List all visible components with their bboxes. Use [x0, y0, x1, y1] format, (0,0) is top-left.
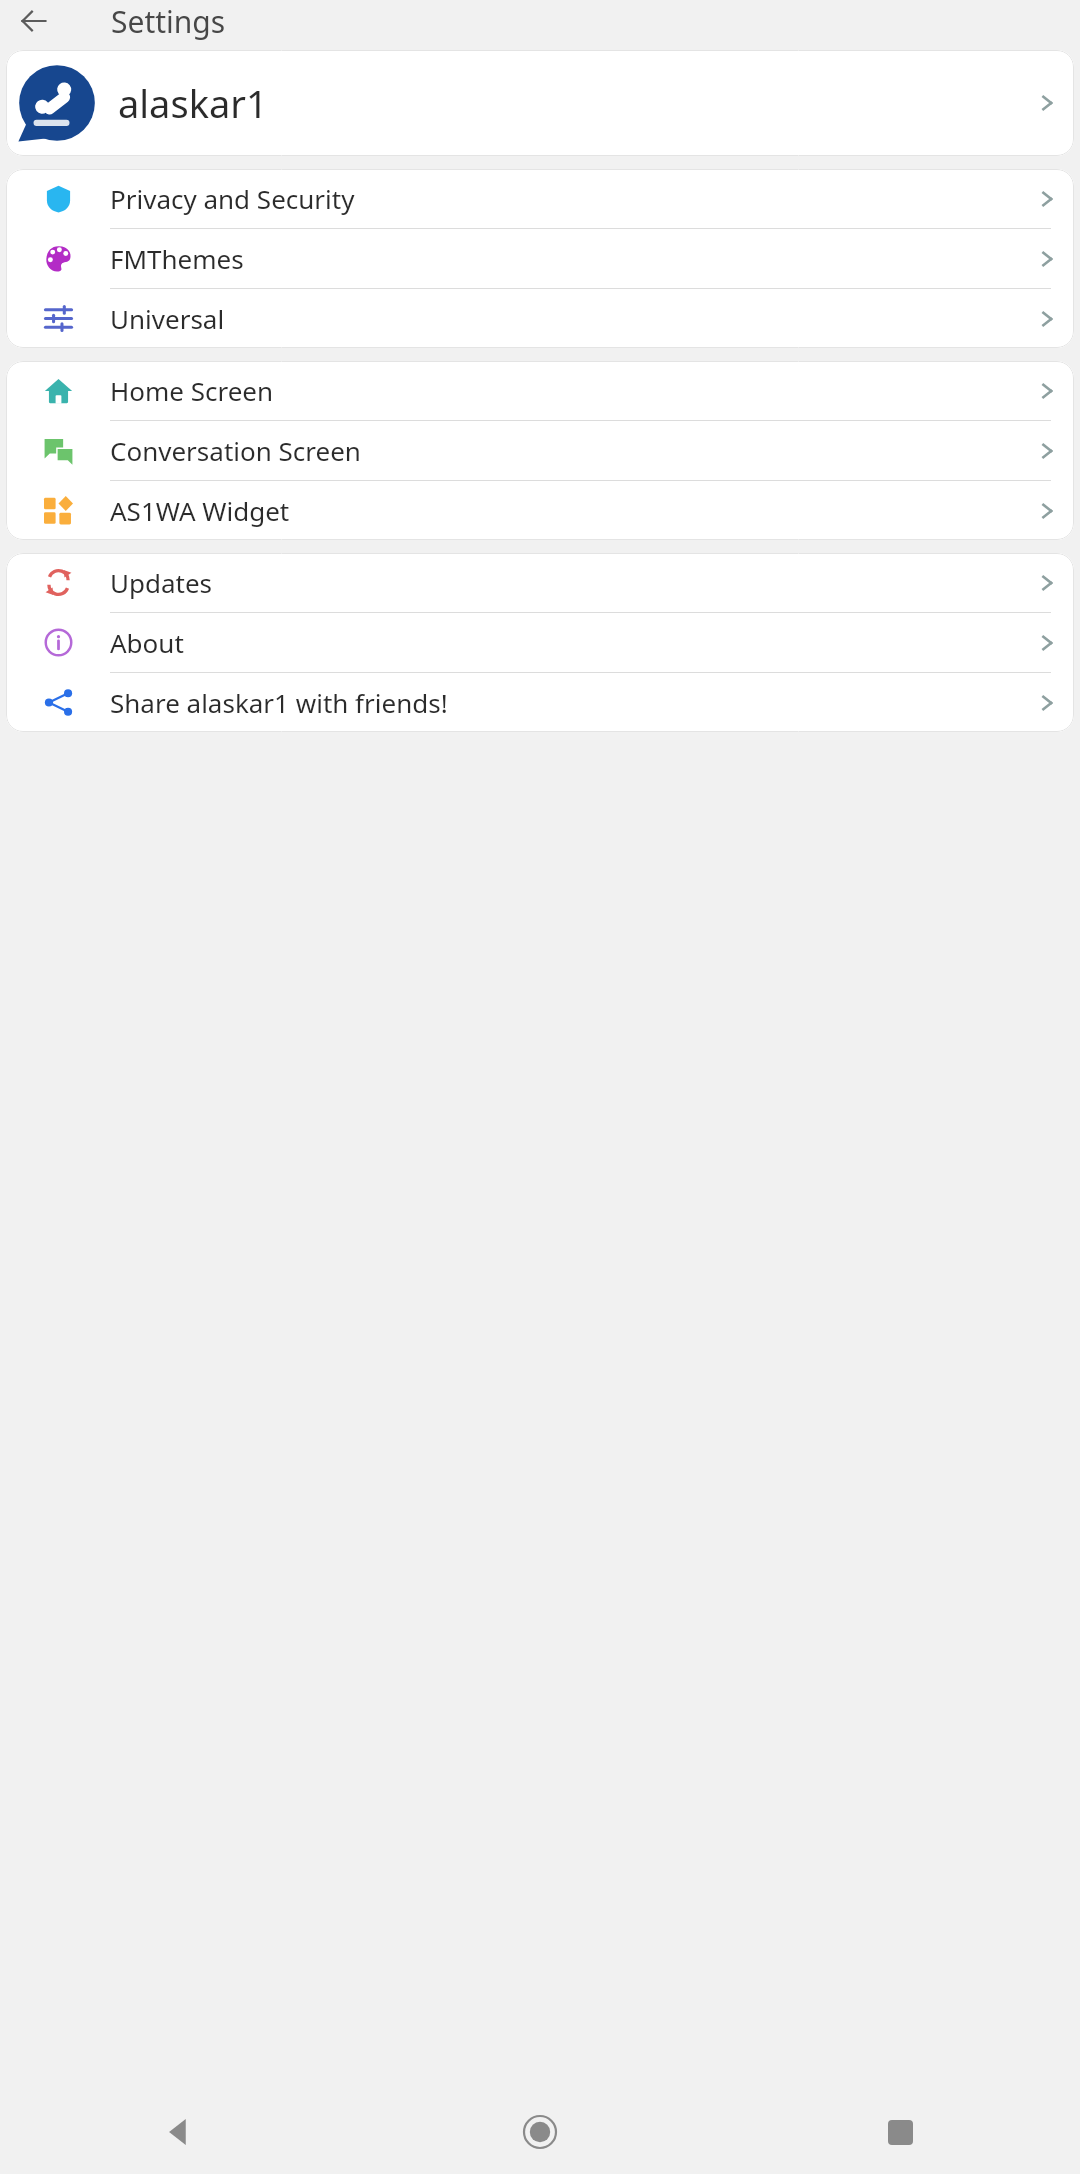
button[interactable]: About: [6, 613, 1074, 672]
staticText: Privacy and Security: [110, 181, 355, 216]
button[interactable]: FMThemes: [6, 229, 1074, 288]
staticText: FMThemes: [110, 241, 244, 276]
button[interactable]: Universal: [6, 289, 1074, 348]
button[interactable]: AS1WA Widget: [6, 481, 1074, 540]
button[interactable]: Privacy and Security: [6, 169, 1074, 228]
staticText: Settings: [111, 1, 226, 42]
button[interactable]: Home Screen: [6, 361, 1074, 420]
button[interactable]: Back: [0, 2090, 360, 2174]
staticText: Home Screen: [110, 373, 274, 408]
button[interactable]: alaskar1: [6, 50, 1074, 156]
button[interactable]: Home: [360, 2090, 720, 2174]
button[interactable]: Back: [12, 0, 56, 42]
button[interactable]: Recents: [720, 2090, 1080, 2174]
button[interactable]: Conversation Screen: [6, 421, 1074, 480]
button[interactable]: Updates: [6, 553, 1074, 612]
staticText: Share alaskar1 with friends!: [110, 685, 448, 720]
staticText: Updates: [110, 565, 213, 600]
button[interactable]: Share alaskar1 with friends!: [6, 673, 1074, 732]
staticText: alaskar1: [118, 77, 268, 129]
staticText: AS1WA Widget: [110, 493, 290, 528]
staticText: Universal: [110, 301, 225, 336]
staticText: Conversation Screen: [110, 433, 361, 468]
staticText: About: [110, 625, 184, 660]
